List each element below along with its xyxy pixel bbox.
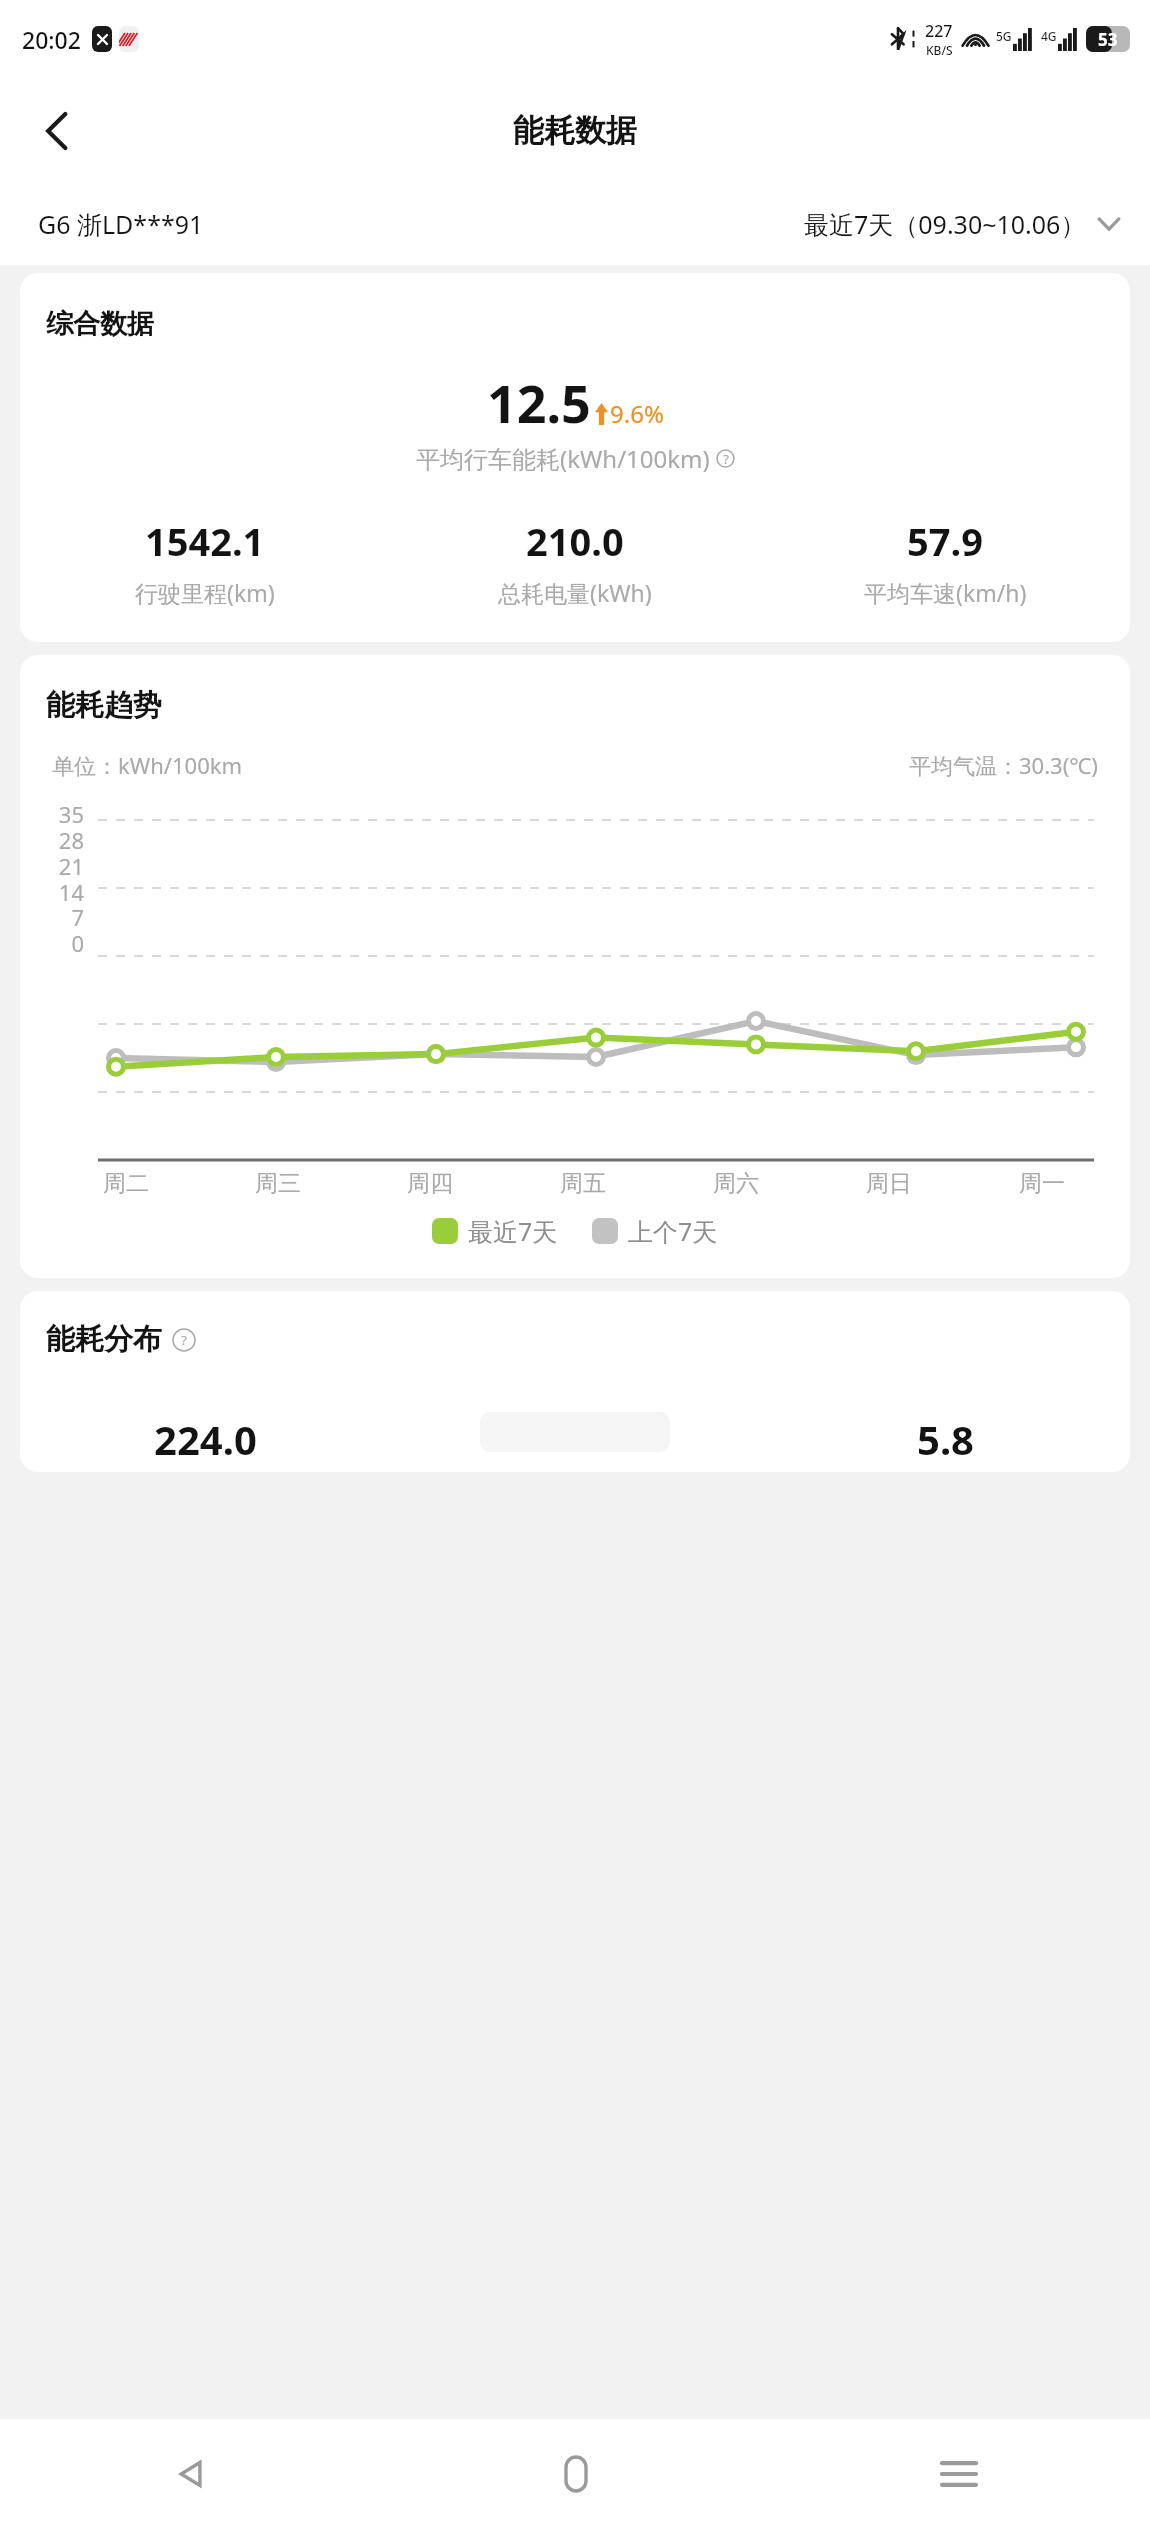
- staticText: 21: [20, 851, 84, 881]
- staticText: 57.9: [907, 515, 983, 567]
- staticText: 平均气温：30.3(℃): [909, 750, 1098, 780]
- staticText: 28: [20, 825, 84, 855]
- staticText: 周一: [1019, 1169, 1065, 1198]
- staticText: ?: [181, 1331, 187, 1349]
- staticText: 35: [20, 799, 84, 829]
- staticText: 0: [20, 928, 84, 958]
- staticText: 能耗趋势: [46, 687, 162, 724]
- staticText: 周六: [713, 1169, 759, 1198]
- staticText: 14: [20, 877, 84, 907]
- staticText: 综合数据: [46, 307, 154, 341]
- staticText: 224.0: [154, 1412, 257, 1466]
- staticText: 5G: [996, 28, 1012, 44]
- staticText: 4G: [1041, 28, 1057, 44]
- staticText: 最近7天: [468, 1214, 558, 1248]
- button[interactable]: 最近7天（09.30~10.06）: [804, 207, 1150, 241]
- button[interactable]: Home: [384, 2419, 767, 2529]
- staticText: 总耗电量(kWh): [498, 577, 652, 608]
- button[interactable]: Back: [24, 99, 88, 163]
- button[interactable]: 能耗分布: [20, 1291, 1130, 1472]
- staticText: 行驶里程(km): [135, 577, 275, 608]
- staticText: KB/S: [926, 42, 953, 58]
- staticText: 7: [20, 902, 84, 932]
- staticText: 周二: [103, 1169, 149, 1198]
- button[interactable]: 综合数据: [20, 273, 1130, 642]
- staticText: 5.8: [917, 1412, 974, 1466]
- staticText: 周日: [866, 1169, 912, 1198]
- staticText: 227: [925, 20, 953, 42]
- staticText: 能耗分布: [46, 1321, 162, 1358]
- button[interactable]: 能耗趋势: [20, 655, 1130, 1278]
- staticText: 周五: [560, 1169, 606, 1198]
- button[interactable]: Recent apps: [767, 2419, 1150, 2529]
- button[interactable]: Back: [0, 2419, 384, 2529]
- staticText: 周三: [255, 1169, 301, 1198]
- staticText: 9.6%: [610, 397, 664, 430]
- staticText: 12.5: [487, 367, 591, 438]
- staticText: 210.0: [526, 515, 624, 567]
- staticText: 周四: [407, 1169, 453, 1198]
- staticText: ?: [723, 450, 729, 468]
- staticText: 20:02: [22, 24, 81, 55]
- staticText: 53: [1098, 28, 1118, 51]
- staticText: G6 浙LD***91: [38, 207, 204, 241]
- staticText: 能耗数据: [513, 111, 637, 150]
- staticText: 上个7天: [628, 1214, 718, 1248]
- staticText: 最近7天（09.30~10.06）: [804, 207, 1086, 241]
- staticText: 1542.1: [145, 515, 265, 567]
- staticText: 单位：kWh/100km: [52, 750, 243, 780]
- staticText: 平均行车能耗(kWh/100km): [416, 442, 710, 475]
- staticText: 平均车速(km/h): [864, 577, 1027, 608]
